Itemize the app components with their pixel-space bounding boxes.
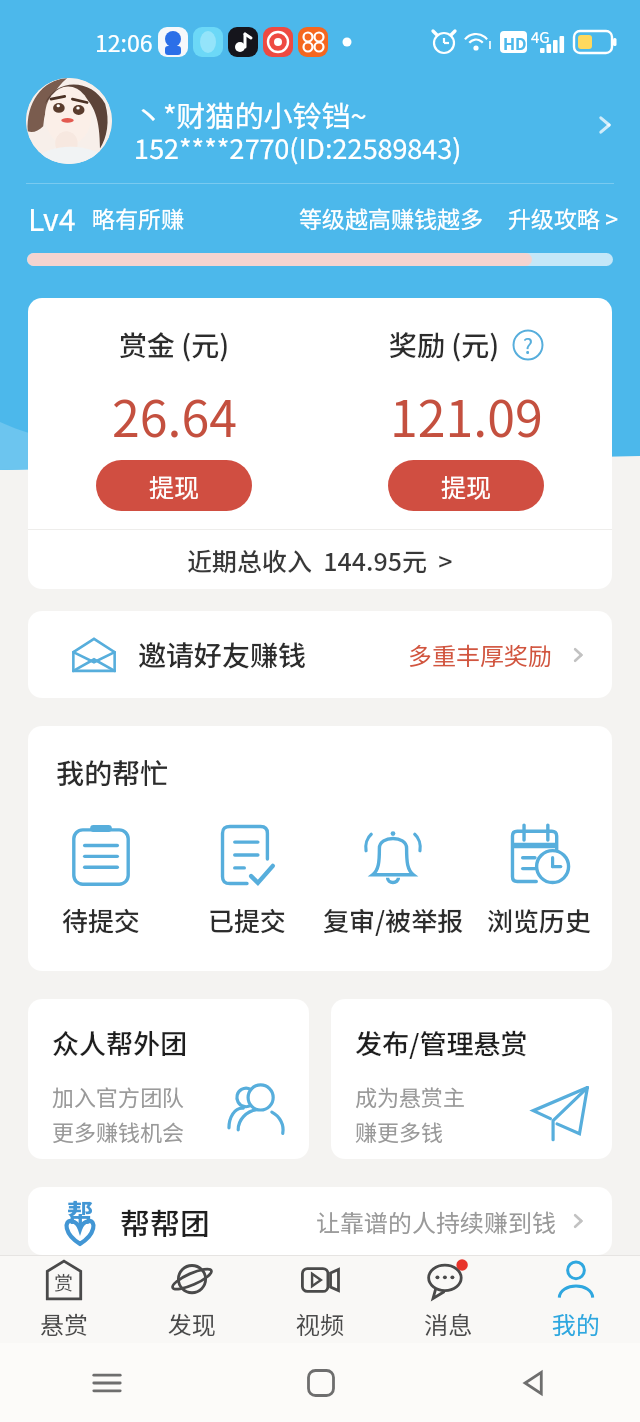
button[interactable]: 邀请好友赚钱 <box>28 611 612 698</box>
staticText: 奖励 (元) <box>389 324 500 365</box>
button[interactable]: 浏览历史 <box>466 821 612 939</box>
button[interactable]: Recents <box>84 1360 130 1406</box>
button[interactable]: 提现 <box>388 460 544 511</box>
button[interactable]: Profile details <box>590 110 620 140</box>
staticText: HD <box>503 31 527 54</box>
button[interactable]: 复审/被举报 <box>320 821 466 939</box>
staticText: 成为悬赏主 <box>355 1080 466 1112</box>
button[interactable]: 发现 <box>128 1256 256 1343</box>
staticText: 帮 <box>67 1193 94 1231</box>
staticText: 26.64 <box>112 379 237 451</box>
button[interactable]: Help <box>512 329 544 361</box>
staticText: 众人帮外团 <box>52 1023 187 1062</box>
staticText: ? <box>523 330 533 360</box>
button[interactable]: 丶*财猫的小铃铛~ <box>0 66 640 183</box>
staticText: 赚更多钱 <box>355 1115 444 1147</box>
staticText: 12:06 <box>95 25 153 58</box>
staticText: 已提交 <box>208 901 287 939</box>
staticText: 待提交 <box>62 901 141 939</box>
staticText: 近期总收入 144.95元 > <box>187 542 453 578</box>
button[interactable]: 待提交 <box>28 821 174 939</box>
button[interactable]: 消息 <box>384 1256 512 1343</box>
staticText: 赏 <box>54 1268 74 1296</box>
staticText: 我的 <box>552 1306 600 1341</box>
staticText: 复审/被举报 <box>323 901 464 939</box>
button[interactable]: 赏 <box>0 1256 128 1343</box>
staticText: 赏金 (元) <box>119 324 230 365</box>
staticText: 更多赚钱机会 <box>52 1115 185 1147</box>
staticText: 121.09 <box>390 379 543 451</box>
button[interactable]: 视频 <box>256 1256 384 1343</box>
staticText: 我的帮忙 <box>56 752 169 793</box>
button[interactable]: Lv4 <box>0 184 640 250</box>
button[interactable]: 发布/管理悬赏 <box>331 999 612 1159</box>
staticText: Lv4 <box>28 196 76 239</box>
staticText: 多重丰厚奖励 <box>408 637 552 672</box>
button[interactable]: 近期总收入 144.95元 > <box>28 530 612 589</box>
staticText: 提现 <box>441 468 492 504</box>
button[interactable]: 我的 <box>512 1256 640 1343</box>
staticText: 帮帮团 <box>120 1200 210 1243</box>
staticText: 152****2770(ID:22589843) <box>134 128 462 167</box>
staticText: 等级越高赚钱越多 <box>299 201 483 234</box>
staticText: 发布/管理悬赏 <box>355 1023 528 1062</box>
button[interactable]: 帮 <box>28 1187 612 1255</box>
staticText: 让靠谱的人持续赚到钱 <box>316 1204 556 1239</box>
staticText: 邀请好友赚钱 <box>138 634 307 675</box>
staticText: 4G <box>531 26 550 48</box>
button[interactable]: Back <box>511 1360 557 1406</box>
staticText: 悬赏 <box>40 1306 88 1341</box>
staticText: 浏览历史 <box>487 901 592 939</box>
button[interactable]: 已提交 <box>174 821 320 939</box>
button[interactable]: 众人帮外团 <box>28 999 309 1159</box>
button[interactable]: 提现 <box>96 460 252 511</box>
button[interactable]: Home <box>298 1360 344 1406</box>
staticText: 发现 <box>168 1306 216 1341</box>
staticText: 加入官方团队 <box>52 1080 185 1112</box>
staticText: 消息 <box>424 1306 472 1341</box>
staticText: 丶*财猫的小铃铛~ <box>134 93 367 135</box>
staticText: 略有所赚 <box>92 201 184 234</box>
staticText: 升级攻略 > <box>508 201 618 234</box>
staticText: 视频 <box>296 1306 344 1341</box>
staticText: 提现 <box>149 468 200 504</box>
